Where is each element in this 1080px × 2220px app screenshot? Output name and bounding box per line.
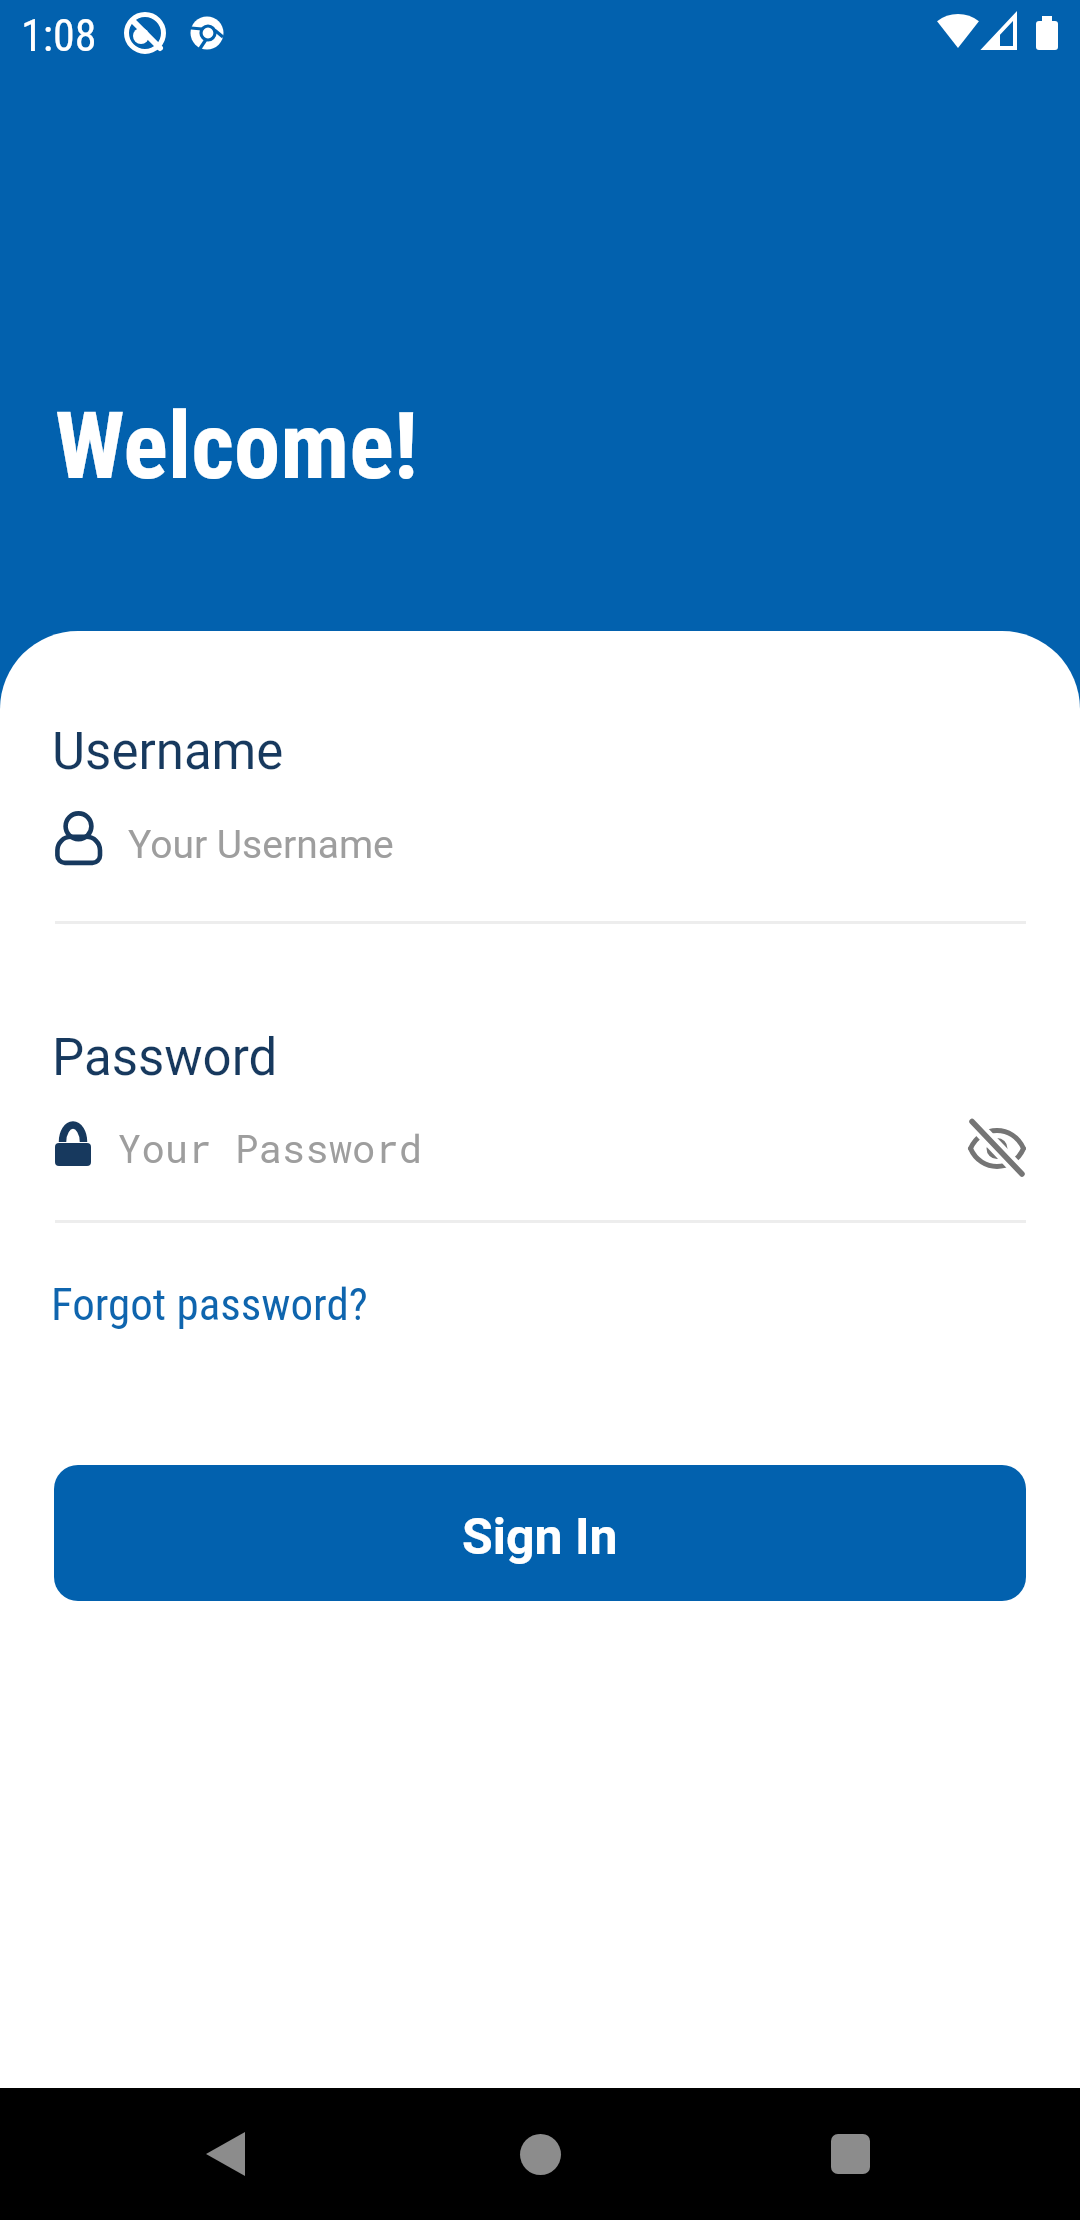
- button[interactable]: Your Username: [50, 801, 980, 876]
- button[interactable]: [952, 1103, 1042, 1193]
- button[interactable]: [795, 2088, 905, 2220]
- staticText: 1:08: [21, 10, 97, 62]
- staticText: Welcome!: [55, 392, 419, 501]
- staticText: Username: [52, 722, 284, 782]
- staticText: Your Username: [128, 822, 394, 868]
- button[interactable]: [170, 2088, 280, 2220]
- button[interactable]: Sign In: [54, 1465, 1026, 1601]
- button[interactable]: Your Password: [50, 1109, 900, 1184]
- button[interactable]: [485, 2088, 595, 2220]
- button[interactable]: Forgot password?: [51, 1278, 368, 1331]
- staticText: Password: [52, 1028, 278, 1088]
- staticText: Sign In: [462, 1508, 618, 1567]
- staticText: Your Password: [118, 1122, 423, 1173]
